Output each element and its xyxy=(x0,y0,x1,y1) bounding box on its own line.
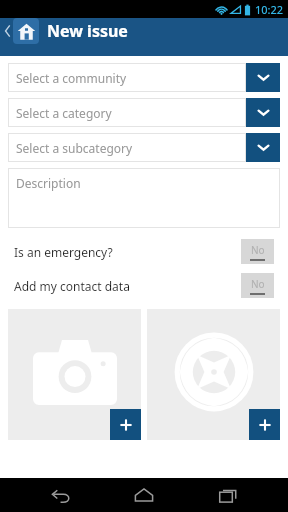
button[interactable]: Is an emergency? xyxy=(14,238,274,265)
button[interactable]: Description xyxy=(8,168,280,228)
staticText: 10:22 xyxy=(255,2,284,17)
button[interactable]: Select a subcategory xyxy=(8,133,280,162)
button[interactable]: Up, home xyxy=(3,18,288,44)
button[interactable]: Add photo xyxy=(8,309,141,440)
button[interactable]: Add location xyxy=(147,309,280,440)
staticText: Description xyxy=(16,175,81,191)
button[interactable]: Back xyxy=(38,478,84,512)
button[interactable]: Add my contact data xyxy=(14,272,274,299)
button[interactable]: Add xyxy=(249,409,280,440)
button[interactable]: Add xyxy=(110,409,141,440)
staticText: Select a community xyxy=(16,70,127,86)
staticText: Select a category xyxy=(16,105,112,121)
staticText: Add my contact data xyxy=(14,278,130,294)
staticText: New issue xyxy=(47,20,128,42)
button[interactable]: Recent apps xyxy=(205,478,251,512)
staticText: No xyxy=(251,243,265,257)
staticText: Is an emergency? xyxy=(14,244,113,260)
staticText: No xyxy=(251,277,265,291)
button[interactable]: Home xyxy=(121,478,167,512)
button[interactable]: Select a category xyxy=(8,98,280,127)
staticText: Select a subcategory xyxy=(16,140,133,156)
button[interactable]: Select a community xyxy=(8,63,280,92)
